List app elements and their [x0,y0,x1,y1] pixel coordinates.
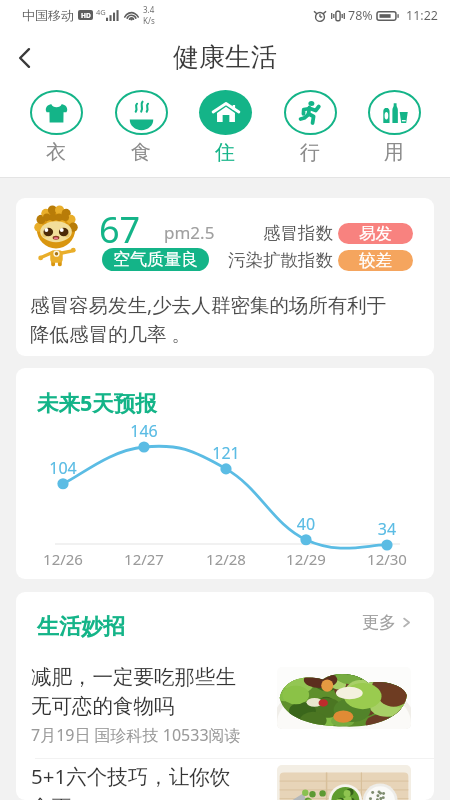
staticText: HD [81,11,91,20]
button[interactable]: 用 [363,86,425,165]
staticText: 食 [131,140,151,165]
staticText: 空气质量良 [113,249,198,270]
staticText: 污染扩散指数 [228,249,333,271]
staticText: 未来5天预报 [37,388,157,417]
staticText: 感冒容易发生,少去人群密集的场所有利于 降低感冒的几率 。 [30,291,387,347]
staticText: 104 [41,457,85,479]
staticText: 减肥，一定要吃那些生 无可恋的食物吗 [31,664,236,719]
staticText: 健康生活 [173,41,277,74]
staticText: 3.4 [143,4,155,15]
staticText: 12/28 [199,549,253,569]
staticText: 7月19日 国珍科技 10533阅读 [31,724,241,746]
staticText: 感冒指数 [263,222,333,244]
button[interactable]: 更多 [357,607,417,638]
staticText: 衣 [46,140,66,165]
staticText: 行 [300,140,320,165]
button[interactable]: 行 [279,86,341,165]
staticText: 11:22 [406,7,438,24]
staticText: 易发 [359,223,392,244]
button[interactable]: 住 [194,86,256,165]
staticText: 12/26 [36,549,90,569]
staticText: 更多 [362,612,396,633]
staticText: 78% [348,7,373,24]
button[interactable]: 衣 [25,86,87,165]
staticText: pm2.5 [164,221,215,244]
button[interactable] [16,654,434,758]
staticText: 34 [365,518,409,540]
staticText: 5+1六个技巧，让你饮 食更 [31,762,231,800]
staticText: 生活妙招 [37,613,125,641]
button[interactable]: 返回 [0,33,50,83]
staticText: 121 [204,442,248,464]
staticText: 中国移动 [22,7,74,23]
staticText: 较差 [359,250,392,271]
staticText: 146 [122,420,166,442]
staticText: 40 [284,513,328,535]
staticText: 67 [99,205,141,254]
staticText: 12/29 [279,549,333,569]
button[interactable]: 食 [110,86,172,165]
staticText: 用 [384,140,404,165]
staticText: K/s [143,15,155,26]
staticText: 12/27 [117,549,171,569]
button[interactable]: 生活妙招 [32,608,130,646]
staticText: 住 [215,140,235,165]
button[interactable] [16,759,434,800]
staticText: 12/30 [360,549,414,569]
staticText: 4G [96,7,106,17]
